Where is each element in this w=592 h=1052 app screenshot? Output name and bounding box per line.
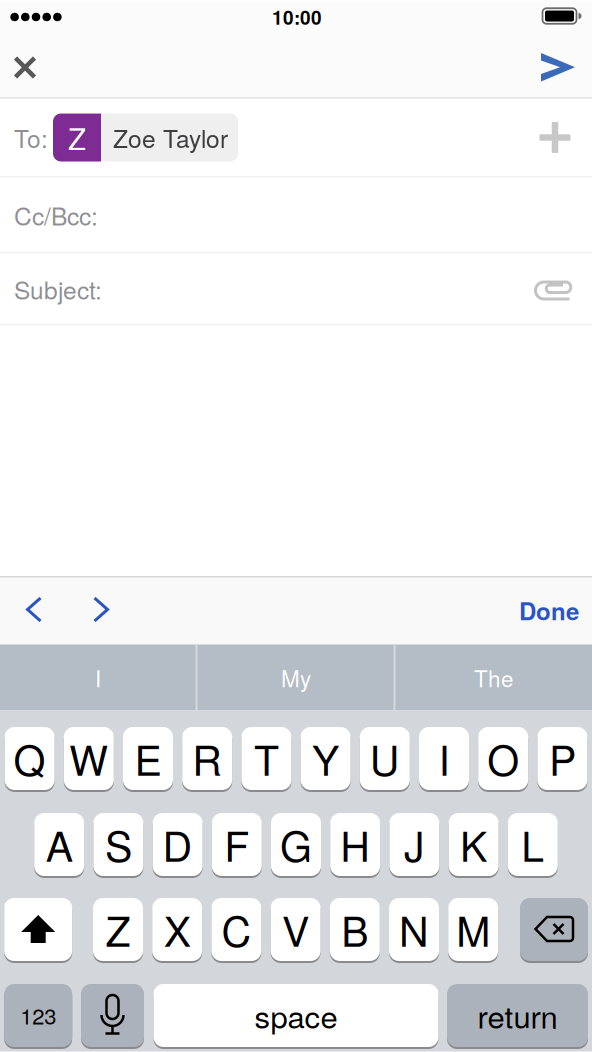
staticText: I — [95, 661, 101, 694]
button[interactable]: space — [153, 984, 438, 1049]
button[interactable]: Next field — [83, 587, 119, 631]
staticText: 123 — [20, 999, 56, 1031]
button[interactable]: My — [199, 644, 393, 710]
staticText: Q — [14, 729, 46, 787]
button[interactable]: C — [211, 898, 261, 963]
staticText: K — [460, 815, 487, 873]
staticText: O — [487, 729, 519, 787]
staticText: S — [105, 815, 132, 873]
button[interactable]: Q — [5, 727, 55, 792]
staticText: F — [224, 815, 249, 873]
staticText: Y — [312, 729, 339, 787]
button[interactable]: Attach file — [528, 270, 577, 311]
staticText: I — [438, 729, 449, 787]
button[interactable]: I — [419, 727, 469, 792]
staticText: H — [340, 815, 370, 873]
staticText: X — [164, 900, 191, 958]
button[interactable]: Delete — [520, 898, 588, 963]
button[interactable]: 123 — [4, 984, 72, 1049]
button[interactable]: E — [123, 727, 173, 792]
button[interactable]: The — [397, 644, 591, 710]
button[interactable]: Z — [93, 898, 143, 963]
button[interactable]: K — [449, 813, 499, 878]
button[interactable]: G — [271, 813, 321, 878]
button[interactable]: R — [182, 727, 232, 792]
staticText: Z — [105, 900, 130, 958]
staticText: R — [192, 729, 222, 787]
button[interactable]: T — [241, 727, 291, 792]
staticText: W — [69, 729, 108, 787]
staticText: Cc/Bcc: — [14, 197, 98, 233]
staticText: Zoe Taylor — [113, 120, 228, 155]
staticText: U — [370, 729, 400, 787]
button[interactable]: P — [537, 727, 587, 792]
staticText: To: — [14, 120, 48, 155]
button[interactable]: Done — [509, 593, 589, 628]
button[interactable]: A — [34, 813, 84, 878]
button[interactable]: Send — [532, 44, 584, 90]
button[interactable]: Z — [53, 113, 238, 161]
staticText: The — [474, 661, 514, 694]
button[interactable]: X — [152, 898, 202, 963]
button[interactable]: B — [330, 898, 380, 963]
button[interactable]: D — [153, 813, 203, 878]
button[interactable]: V — [271, 898, 321, 963]
staticText: return — [477, 993, 557, 1037]
button[interactable]: S — [93, 813, 143, 878]
staticText: Done — [519, 593, 579, 628]
staticText: D — [163, 815, 193, 873]
button[interactable]: Add recipient — [533, 115, 577, 159]
staticText: B — [341, 900, 368, 958]
staticText: L — [521, 815, 544, 873]
staticText: C — [221, 900, 251, 958]
staticText: P — [549, 729, 576, 787]
button[interactable]: N — [389, 898, 439, 963]
button[interactable]: Y — [301, 727, 351, 792]
button[interactable]: L — [508, 813, 558, 878]
staticText: M — [456, 900, 490, 958]
staticText: Subject: — [14, 271, 102, 307]
staticText: E — [134, 729, 161, 787]
staticText: V — [282, 900, 309, 958]
button[interactable]: Shift — [4, 898, 72, 963]
button[interactable]: Previous field — [16, 587, 52, 631]
button[interactable]: Close — [2, 44, 48, 90]
button[interactable]: Dictate — [81, 984, 144, 1049]
staticText: A — [46, 815, 73, 873]
button[interactable]: W — [64, 727, 114, 792]
staticText: My — [281, 661, 311, 694]
staticText: space — [254, 993, 337, 1037]
button[interactable]: J — [389, 813, 439, 878]
button[interactable]: H — [330, 813, 380, 878]
staticText: T — [254, 729, 279, 787]
button[interactable]: I — [1, 644, 195, 710]
button[interactable]: M — [448, 898, 498, 963]
button[interactable]: U — [360, 727, 410, 792]
staticText: Z — [68, 116, 86, 159]
staticText: J — [404, 815, 425, 873]
button[interactable]: O — [478, 727, 528, 792]
staticText: G — [280, 815, 312, 873]
staticText: 10:00 — [272, 3, 322, 31]
button[interactable]: return — [447, 984, 588, 1049]
staticText: N — [399, 900, 429, 958]
button[interactable]: F — [212, 813, 262, 878]
